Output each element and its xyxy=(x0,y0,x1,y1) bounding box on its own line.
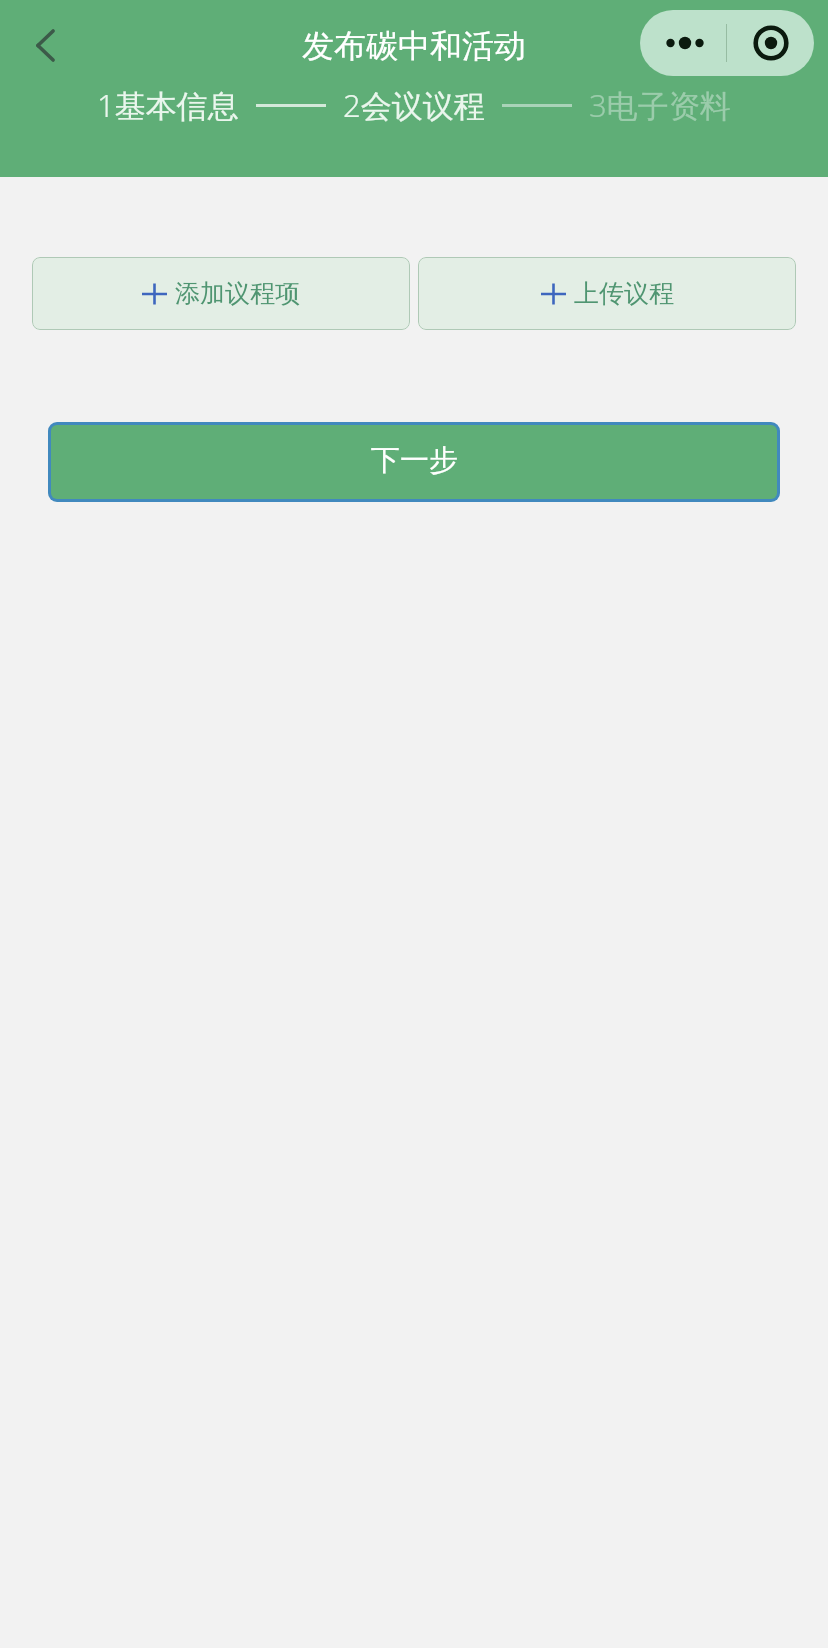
staticText: 2会议议程 xyxy=(343,84,485,126)
button[interactable]: 添加议程项 xyxy=(32,257,410,330)
button[interactable]: 上传议程 xyxy=(418,257,796,330)
staticText: 下一步 xyxy=(371,442,458,479)
staticText: 发布碳中和活动 xyxy=(302,26,526,66)
staticText: 1基本信息 xyxy=(97,84,239,126)
button[interactable]: Close mini program xyxy=(727,10,814,76)
button[interactable]: 下一步 xyxy=(51,425,777,499)
staticText: 3电子资料 xyxy=(589,84,731,126)
staticText: 添加议程项 xyxy=(175,278,300,309)
button[interactable]: Back xyxy=(14,14,76,76)
button[interactable]: More options xyxy=(640,10,726,76)
staticText: 上传议程 xyxy=(574,278,674,309)
